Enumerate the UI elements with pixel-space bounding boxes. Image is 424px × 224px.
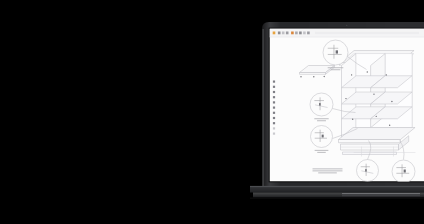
button[interactable]: Furniture assembly CAD drawing on a lapt… [0, 0, 424, 224]
